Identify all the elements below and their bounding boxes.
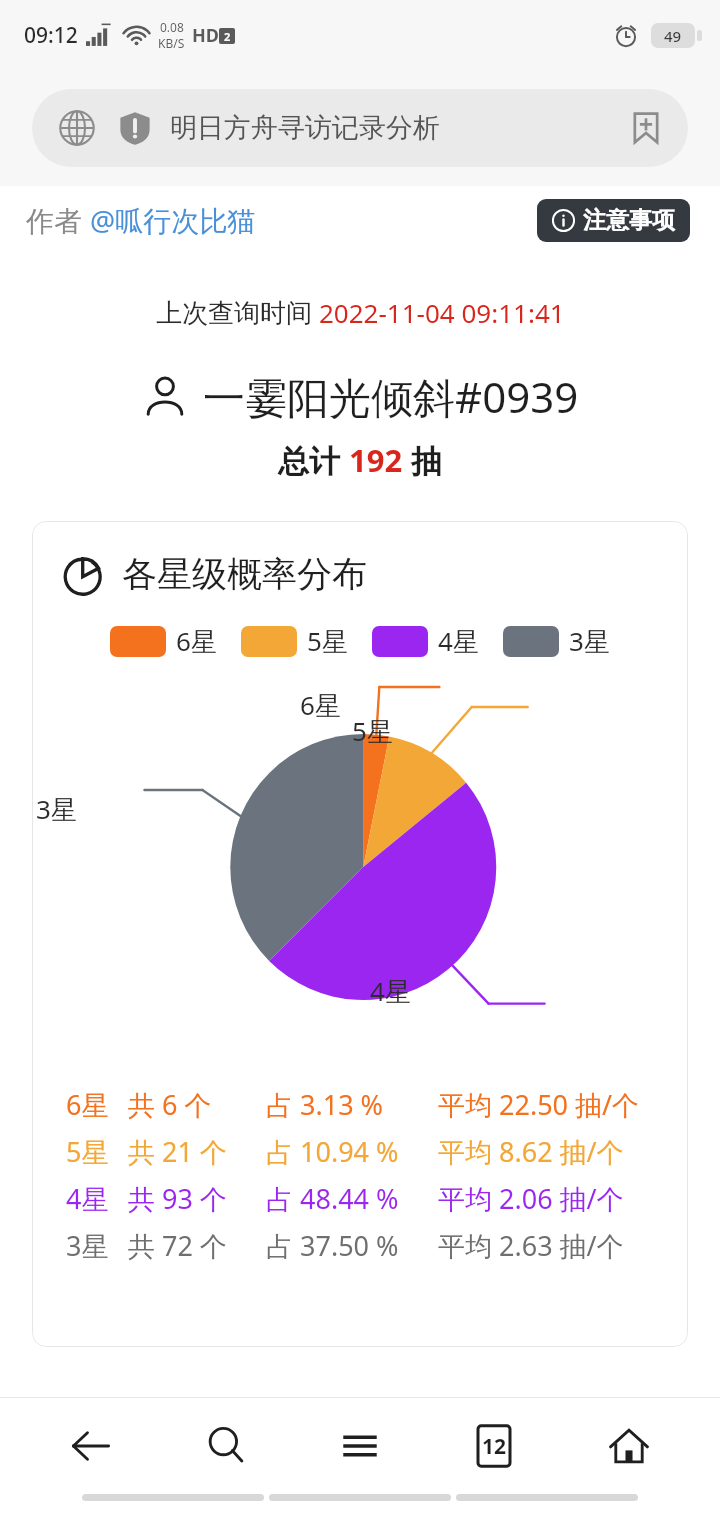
staticText: 12	[482, 1432, 507, 1461]
button[interactable]: Tabs, 12 open	[451, 1403, 537, 1489]
staticText: 4星	[370, 973, 411, 1009]
staticText: 占 10.94 %	[266, 1133, 399, 1170]
staticText: 平均 2.63 抽/个	[438, 1227, 624, 1264]
staticText: 4星	[66, 1180, 109, 1217]
button[interactable]: Search	[183, 1403, 269, 1489]
button[interactable]: Menu	[317, 1403, 403, 1489]
staticText: KB/S	[158, 35, 185, 51]
staticText: 2022-11-04 09:11:41	[319, 295, 565, 330]
staticText: 4星	[438, 623, 479, 659]
staticText: 3星	[569, 623, 610, 659]
button[interactable]: 4星	[372, 623, 479, 659]
button[interactable]: 作者	[26, 201, 256, 239]
button[interactable]: 3星	[503, 623, 610, 659]
staticText: 各星级概率分布	[122, 552, 367, 596]
button[interactable]: Home	[586, 1403, 672, 1489]
staticText: 抽	[403, 439, 443, 481]
button[interactable]: 5星	[241, 623, 348, 659]
staticText: 占 48.44 %	[266, 1180, 399, 1217]
staticText: HD	[192, 23, 219, 48]
staticText: 平均 2.06 抽/个	[438, 1180, 624, 1217]
button[interactable]: Add bookmark	[618, 100, 674, 156]
staticText: 3星	[36, 791, 77, 827]
staticText: 共 93 个	[128, 1180, 227, 1217]
staticText: 注意事项	[583, 206, 675, 235]
staticText: 49	[664, 26, 682, 46]
other: Site info	[58, 109, 96, 147]
staticText: 09:12	[24, 21, 78, 50]
staticText: 共 6 个	[128, 1086, 212, 1123]
button[interactable]: 6星	[110, 623, 217, 659]
staticText: 5星	[352, 713, 393, 749]
staticText: 上次查询时间	[156, 294, 319, 330]
other: Security warning	[118, 111, 152, 145]
staticText: 平均 22.50 抽/个	[438, 1086, 640, 1123]
button[interactable]: Back	[48, 1403, 134, 1489]
button[interactable]: Site info	[32, 89, 688, 167]
staticText: 作者	[26, 201, 90, 239]
staticText: 6星	[66, 1086, 109, 1123]
staticText: 6星	[300, 687, 341, 723]
staticText: 总计	[278, 439, 349, 481]
staticText: 一霎阳光倾斜#0939	[203, 368, 579, 425]
staticText: 明日方舟寻访记录分析	[170, 111, 440, 145]
staticText: 5星	[66, 1133, 109, 1170]
staticText: 2	[224, 29, 231, 44]
staticText: @呱行次比猫	[90, 201, 256, 239]
staticText: 共 72 个	[128, 1227, 227, 1264]
staticText: 平均 8.62 抽/个	[438, 1133, 624, 1170]
staticText: 占 3.13 %	[266, 1086, 384, 1123]
staticText: 0.08	[160, 19, 184, 35]
staticText: 共 21 个	[128, 1133, 227, 1170]
staticText: 占 37.50 %	[266, 1227, 399, 1264]
button[interactable]: 注意事项	[537, 199, 690, 242]
staticText: 5星	[307, 623, 348, 659]
staticText: 3星	[66, 1227, 109, 1264]
staticText: 192	[349, 439, 403, 481]
staticText: 6星	[176, 623, 217, 659]
